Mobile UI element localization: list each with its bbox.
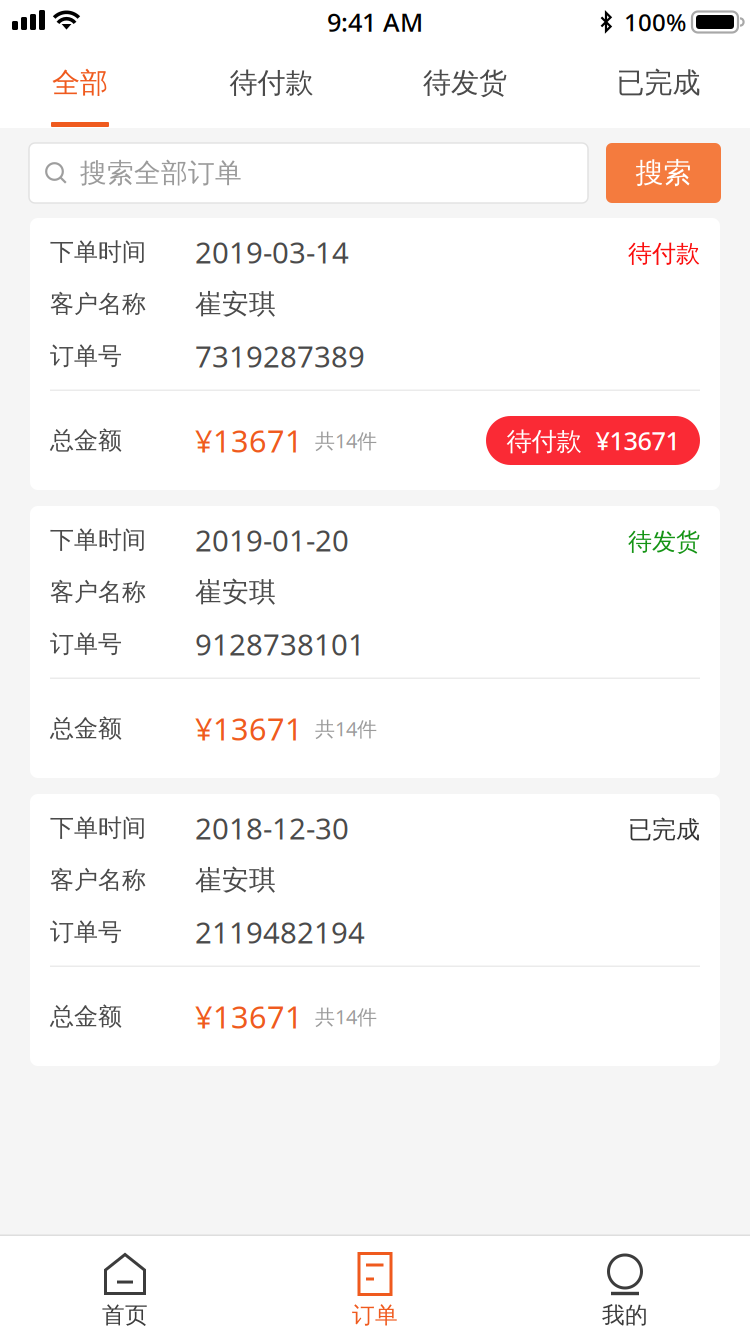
staticText: 崔安琪	[195, 576, 276, 608]
staticText: 总金额	[50, 714, 122, 743]
staticText: 7319287389	[195, 336, 365, 375]
staticText: 共14件	[315, 427, 377, 454]
staticText: 2019-01-20	[195, 520, 349, 559]
staticText: 已完成	[616, 66, 700, 100]
staticText: 总金额	[50, 1002, 122, 1031]
staticText: 共14件	[315, 715, 377, 742]
staticText: 待付款	[628, 239, 700, 268]
staticText: 崔安琪	[195, 864, 276, 896]
staticText: 2018-12-30	[195, 808, 349, 847]
staticText: 已完成	[628, 815, 700, 844]
staticText: 共14件	[315, 1003, 377, 1030]
staticText: 崔安琪	[195, 288, 276, 320]
button[interactable]: 订单	[250, 1236, 500, 1334]
button[interactable]: 待发货	[383, 44, 547, 128]
staticText: 搜索全部订单	[80, 157, 242, 189]
staticText: 下单时间	[50, 237, 146, 267]
staticText: 下单时间	[50, 813, 146, 843]
staticText: 待付款	[229, 66, 313, 100]
staticText: 全部	[52, 66, 108, 100]
staticText: 客户名称	[50, 289, 146, 319]
button[interactable]: 已完成	[547, 44, 750, 128]
staticText: ¥13671	[195, 708, 303, 749]
staticText: ¥13671	[195, 996, 303, 1037]
staticText: 100%	[624, 6, 686, 38]
button[interactable]: 搜索	[606, 143, 721, 203]
button[interactable]: 待付款 ¥13671	[486, 416, 700, 465]
button[interactable]: 首页	[0, 1236, 250, 1334]
button[interactable]: 全部	[0, 44, 160, 128]
staticText: 待发货	[423, 66, 507, 100]
staticText: 总金额	[50, 426, 122, 455]
staticText: 客户名称	[50, 577, 146, 607]
staticText: 我的	[602, 1301, 648, 1329]
staticText: 下单时间	[50, 525, 146, 555]
staticText: 订单号	[50, 341, 122, 371]
staticText: 订单号	[50, 917, 122, 947]
button[interactable]: 待付款	[160, 44, 383, 128]
staticText: 2019-03-14	[195, 232, 349, 271]
staticText: 9:41 AM	[327, 5, 423, 39]
staticText: ¥13671	[195, 420, 303, 461]
staticText: 搜索	[635, 156, 691, 190]
staticText: 客户名称	[50, 865, 146, 895]
staticText: 首页	[102, 1301, 148, 1329]
staticText: 待付款 ¥13671	[506, 424, 679, 457]
staticText: 待发货	[628, 527, 700, 556]
staticText: 9128738101	[195, 624, 365, 663]
staticText: 2119482194	[195, 912, 365, 951]
staticText: 订单号	[50, 629, 122, 659]
staticText: 订单	[352, 1301, 398, 1329]
button[interactable]: 我的	[500, 1236, 750, 1334]
